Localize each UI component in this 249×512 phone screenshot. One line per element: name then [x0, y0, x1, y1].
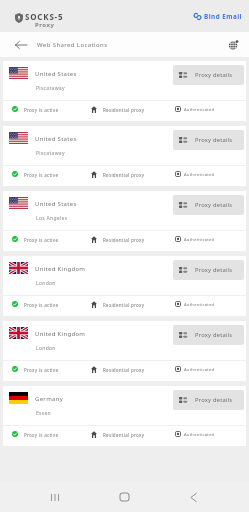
button[interactable]: Proxy details — [173, 130, 244, 150]
button[interactable]: United Kingdom — [3, 256, 246, 316]
button[interactable]: Proxy details — [173, 390, 244, 410]
button[interactable]: United States — [3, 126, 246, 186]
staticText: United States — [35, 135, 77, 143]
staticText: Authenticated — [184, 172, 215, 177]
staticText: Essen — [36, 410, 51, 417]
staticText: Piscataway — [36, 85, 65, 92]
staticText: Proxy details — [195, 266, 233, 274]
button[interactable]: Back — [178, 482, 208, 512]
staticText: Authenticated — [184, 302, 215, 307]
staticText: Authenticated — [184, 237, 215, 242]
staticText: Proxy is active — [24, 172, 59, 178]
staticText: SOCKS-5 — [25, 11, 64, 22]
button[interactable]: Recent apps — [40, 482, 70, 512]
staticText: Residential proxy — [103, 432, 145, 438]
staticText: Web Shared Locations — [37, 41, 108, 49]
button[interactable]: Proxy details — [173, 325, 244, 345]
staticText: Proxy is active — [24, 237, 59, 243]
button[interactable]: United States — [3, 61, 246, 121]
staticText: Authenticated — [184, 367, 215, 372]
staticText: Bind Email — [204, 12, 242, 21]
staticText: Proxy — [35, 21, 55, 29]
staticText: Proxy details — [195, 71, 233, 79]
staticText: Proxy details — [195, 136, 233, 144]
staticText: Proxy is active — [24, 432, 59, 438]
staticText: London — [36, 345, 56, 352]
staticText: Authenticated — [184, 432, 215, 437]
staticText: Residential proxy — [103, 172, 145, 178]
button[interactable]: Back — [8, 32, 34, 57]
button[interactable]: United States — [3, 191, 246, 251]
staticText: Los Angeles — [36, 215, 68, 222]
staticText: United States — [35, 200, 77, 208]
staticText: Piscataway — [36, 150, 65, 157]
button[interactable]: Bind Email — [194, 12, 242, 21]
staticText: Proxy details — [195, 331, 233, 339]
button[interactable]: Web — [224, 32, 242, 57]
button[interactable]: United Kingdom — [3, 321, 246, 381]
staticText: Residential proxy — [103, 367, 145, 373]
staticText: Authenticated — [184, 107, 215, 112]
staticText: Proxy is active — [24, 302, 59, 308]
staticText: United Kingdom — [35, 330, 86, 338]
staticText: Proxy is active — [24, 107, 59, 113]
staticText: Germany — [35, 395, 64, 403]
staticText: Proxy is active — [24, 367, 59, 373]
button[interactable]: Proxy details — [173, 65, 244, 85]
staticText: Residential proxy — [103, 237, 145, 243]
staticText: United Kingdom — [35, 265, 86, 273]
staticText: London — [36, 280, 56, 287]
staticText: Residential proxy — [103, 302, 145, 308]
button[interactable]: Home — [109, 482, 139, 512]
staticText: United States — [35, 70, 77, 78]
staticText: Residential proxy — [103, 107, 145, 113]
staticText: Proxy details — [195, 396, 233, 404]
staticText: Proxy details — [195, 201, 233, 209]
button[interactable]: Proxy details — [173, 195, 244, 215]
button[interactable]: Proxy details — [173, 260, 244, 280]
button[interactable]: Germany — [3, 386, 246, 446]
